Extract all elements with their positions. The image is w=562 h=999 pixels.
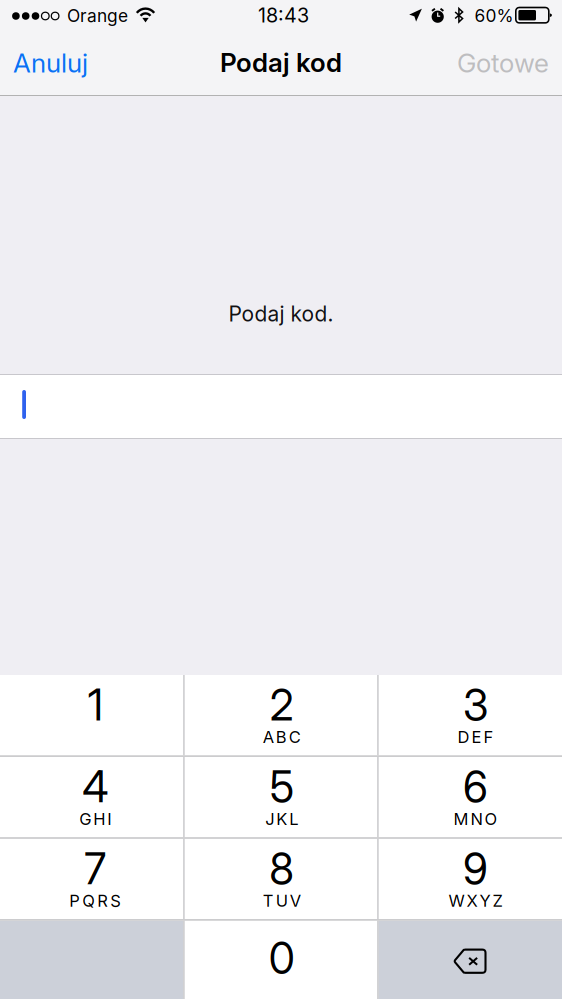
- staticText: Podaj kod.: [228, 301, 333, 327]
- staticText: 1: [88, 679, 103, 731]
- staticText: T U V: [263, 891, 301, 911]
- staticText: 6: [463, 761, 488, 812]
- staticText: D E F: [457, 727, 493, 747]
- staticText: A B C: [263, 727, 301, 747]
- button[interactable]: 7: [0, 839, 183, 919]
- button[interactable]: 3: [379, 675, 562, 755]
- staticText: J K L: [265, 809, 298, 829]
- button[interactable]: 0: [185, 921, 377, 999]
- staticText: P Q R S: [69, 891, 121, 911]
- staticText: Orange: [67, 5, 128, 26]
- staticText: 18:43: [258, 3, 309, 27]
- button[interactable]: 4: [0, 757, 183, 837]
- staticText: 9: [463, 843, 488, 894]
- staticText: Gotowe: [457, 47, 549, 79]
- staticText: 8: [269, 843, 294, 894]
- button[interactable]: 5: [185, 757, 377, 837]
- button[interactable]: Delete: [379, 921, 562, 999]
- staticText: Anuluj: [13, 47, 88, 79]
- button[interactable]: 6: [379, 757, 562, 837]
- staticText: G H I: [79, 809, 111, 829]
- button[interactable]: 9: [379, 839, 562, 919]
- staticText: 5: [270, 761, 294, 812]
- staticText: 2: [270, 679, 294, 731]
- button[interactable]: Gotowe: [448, 30, 562, 96]
- staticText: 7: [84, 843, 106, 894]
- staticText: 60%: [474, 5, 513, 26]
- button[interactable]: 2: [185, 675, 377, 755]
- button[interactable]: 1: [0, 675, 183, 755]
- staticText: Podaj kod: [220, 47, 342, 78]
- staticText: W X Y Z: [448, 891, 502, 911]
- staticText: 3: [463, 679, 488, 731]
- staticText: 4: [82, 761, 108, 812]
- staticText: 0: [269, 932, 295, 984]
- button[interactable]: Anuluj: [0, 30, 114, 96]
- staticText: M N O: [453, 809, 497, 829]
- button[interactable]: 8: [185, 839, 377, 919]
